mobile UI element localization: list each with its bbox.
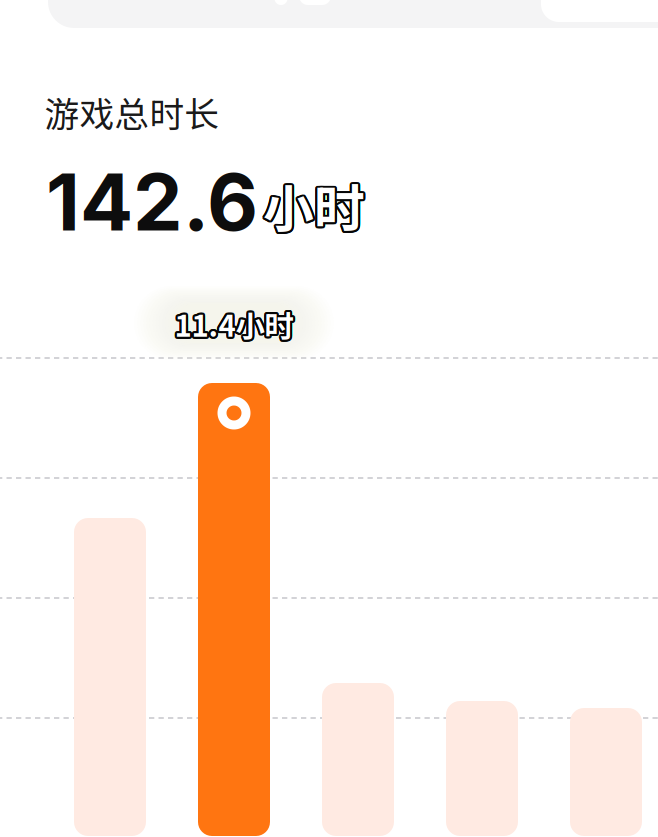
staticText: 11.4小时 <box>176 301 295 344</box>
staticText: 小时 <box>264 170 366 244</box>
button[interactable]: 11.4小时 <box>198 383 270 836</box>
staticText: 小时 <box>265 168 367 242</box>
staticText: 小时 <box>263 166 365 240</box>
staticText: 11.4小时 <box>176 304 295 346</box>
button[interactable]: 2.9小时 <box>446 701 518 836</box>
button[interactable]: 2.7小时 <box>570 708 642 836</box>
staticText: 小时 <box>264 166 366 240</box>
staticText: 11.4小时 <box>175 301 294 343</box>
staticText: 小时 <box>261 169 363 243</box>
staticText: 小时 <box>262 170 364 243</box>
staticText: 11.4小时 <box>174 301 293 343</box>
staticText: 小时 <box>261 168 363 242</box>
staticText: 142.6 <box>46 154 258 250</box>
staticText: 11.4小时 <box>174 303 293 345</box>
staticText: 游戏总时长 <box>44 87 219 137</box>
staticText: 11.4小时 <box>176 302 295 344</box>
staticText: 11.4小时 <box>172 302 291 344</box>
staticText: 11.4小时 <box>176 303 295 345</box>
staticText: 小时 <box>262 166 364 240</box>
staticText: 11.4小时 <box>172 304 291 346</box>
staticText: 小时 <box>263 168 365 242</box>
staticText: 小时 <box>262 170 364 244</box>
staticText: 11.4小时 <box>173 301 292 343</box>
button[interactable]: 3.5小时 <box>322 683 394 836</box>
staticText: 11.4小时 <box>173 304 292 347</box>
staticText: 11.4小时 <box>176 304 295 347</box>
staticText: 小时 <box>265 169 367 243</box>
staticText: 小时 <box>264 167 366 240</box>
staticText: 小时 <box>262 167 364 240</box>
staticText: 小时 <box>264 170 366 243</box>
staticText: 11.4小时 <box>172 303 291 345</box>
staticText: 小时 <box>261 167 363 241</box>
staticText: 小时 <box>263 170 365 244</box>
staticText: 11.4小时 <box>174 305 293 347</box>
staticText: 11.4小时 <box>175 305 294 347</box>
staticText: 11.4小时 <box>173 301 292 344</box>
staticText: 小时 <box>265 167 367 241</box>
staticText: 11.4小时 <box>173 305 292 347</box>
